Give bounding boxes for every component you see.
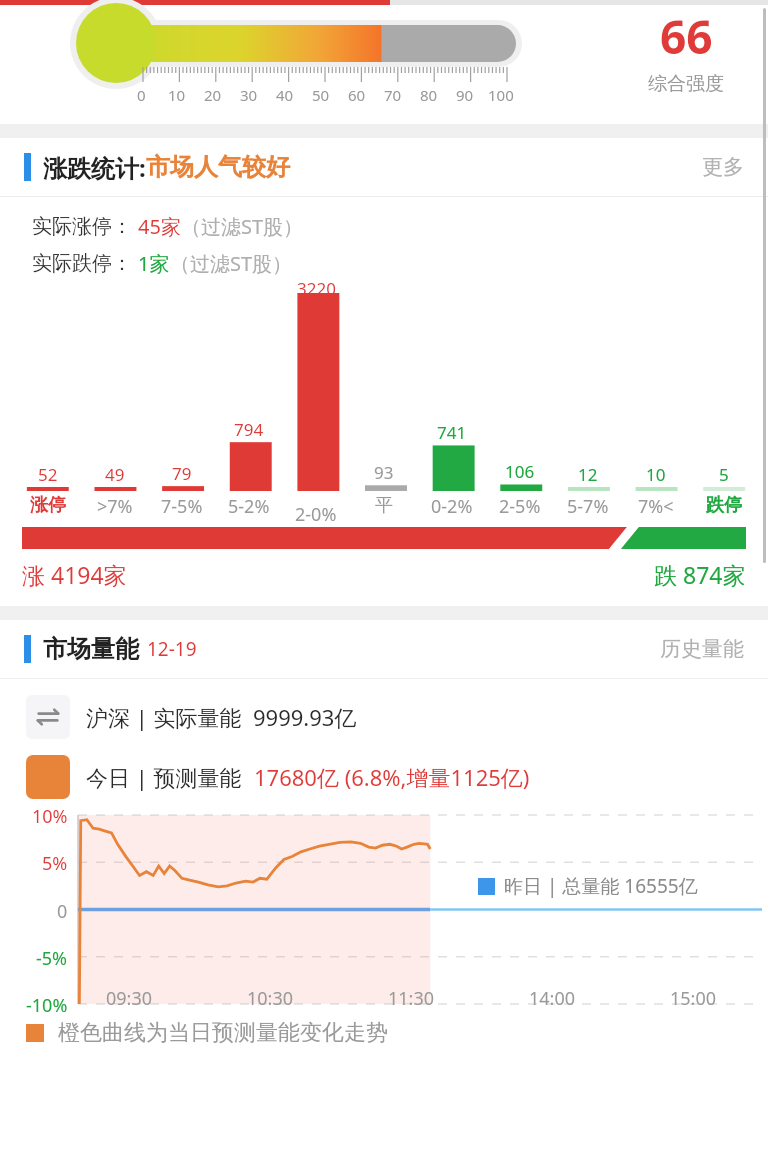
staticText: 10 [646,463,666,486]
staticText: 综合强度 [648,72,724,96]
staticText: 794 [234,418,264,441]
staticText: 涨 4194家 [22,559,127,590]
staticText: 2-0% [295,502,337,527]
staticText: 80 [420,85,438,105]
staticText: 50 [312,85,330,105]
staticText: 10% [32,804,68,829]
staticText: 90 [456,85,474,105]
staticText: 15:00 [670,986,717,1011]
staticText: 93 [374,461,394,484]
button[interactable]: 切换市场 [26,695,357,739]
staticText: 45家 [138,213,181,240]
staticText: 09:30 [106,986,153,1011]
staticText: 3220 [297,277,336,300]
staticText: 17680亿 (6.8%,增量1125亿) [254,762,530,792]
staticText: 5-7% [567,494,609,519]
staticText: 79 [172,462,192,485]
staticText: -10% [26,993,68,1018]
staticText: 涨跌统计: [43,151,146,184]
staticText: 5-2% [228,494,270,519]
staticText: 100 [488,85,514,105]
staticText: 30 [240,85,258,105]
staticText: 0-2% [431,494,473,519]
staticText: 实际跌停： [32,251,132,276]
staticText: 70 [384,85,402,105]
other: 切换市场 [26,695,70,739]
staticText: 涨停 [30,494,66,517]
staticText: 跌停 [706,494,742,517]
staticText: >7% [97,494,133,519]
staticText: 52 [38,463,58,486]
staticText: 2-5% [499,494,541,519]
staticText: 60 [348,85,366,105]
staticText: 66 [660,5,713,68]
staticText: 更多 [702,154,744,180]
staticText: 1家 [138,250,170,277]
staticText: 0 [137,85,146,105]
staticText: 今日 | 预测量能 [86,762,254,792]
staticText: 49 [105,463,125,486]
staticText: 5 [719,463,729,486]
button[interactable]: 市场量能 [0,620,768,678]
staticText: 0 [57,899,68,924]
staticText: 11:30 [388,986,435,1011]
staticText: 昨日 | 总量能 16555亿 [504,873,698,899]
staticText: 7-5% [161,494,203,519]
staticText: 实际涨停： [32,214,132,239]
staticText: 跌 874家 [654,559,746,590]
staticText: 14:00 [529,986,576,1011]
staticText: 平 [375,494,393,517]
staticText: 12-19 [147,636,197,662]
staticText: 106 [505,460,535,483]
staticText: 5% [42,851,68,876]
staticText: 20 [204,85,222,105]
staticText: 沪深 | 实际量能 9999.93亿 [86,702,357,732]
staticText: 10:30 [247,986,294,1011]
staticText: 市场量能 [43,634,139,664]
staticText: （过滤ST股） [181,213,304,240]
staticText: 历史量能 [660,636,744,662]
staticText: 741 [437,421,467,444]
button[interactable]: 涨跌统计: [0,138,768,196]
staticText: 10 [168,85,186,105]
staticText: 40 [276,85,294,105]
staticText: 市场人气较好 [146,152,290,182]
staticText: （过滤ST股） [170,250,293,277]
staticText: 橙色曲线为当日预测量能变化走势 [58,1019,388,1047]
staticText: -5% [36,946,68,971]
staticText: 12 [578,463,598,486]
staticText: 7%< [638,494,674,519]
